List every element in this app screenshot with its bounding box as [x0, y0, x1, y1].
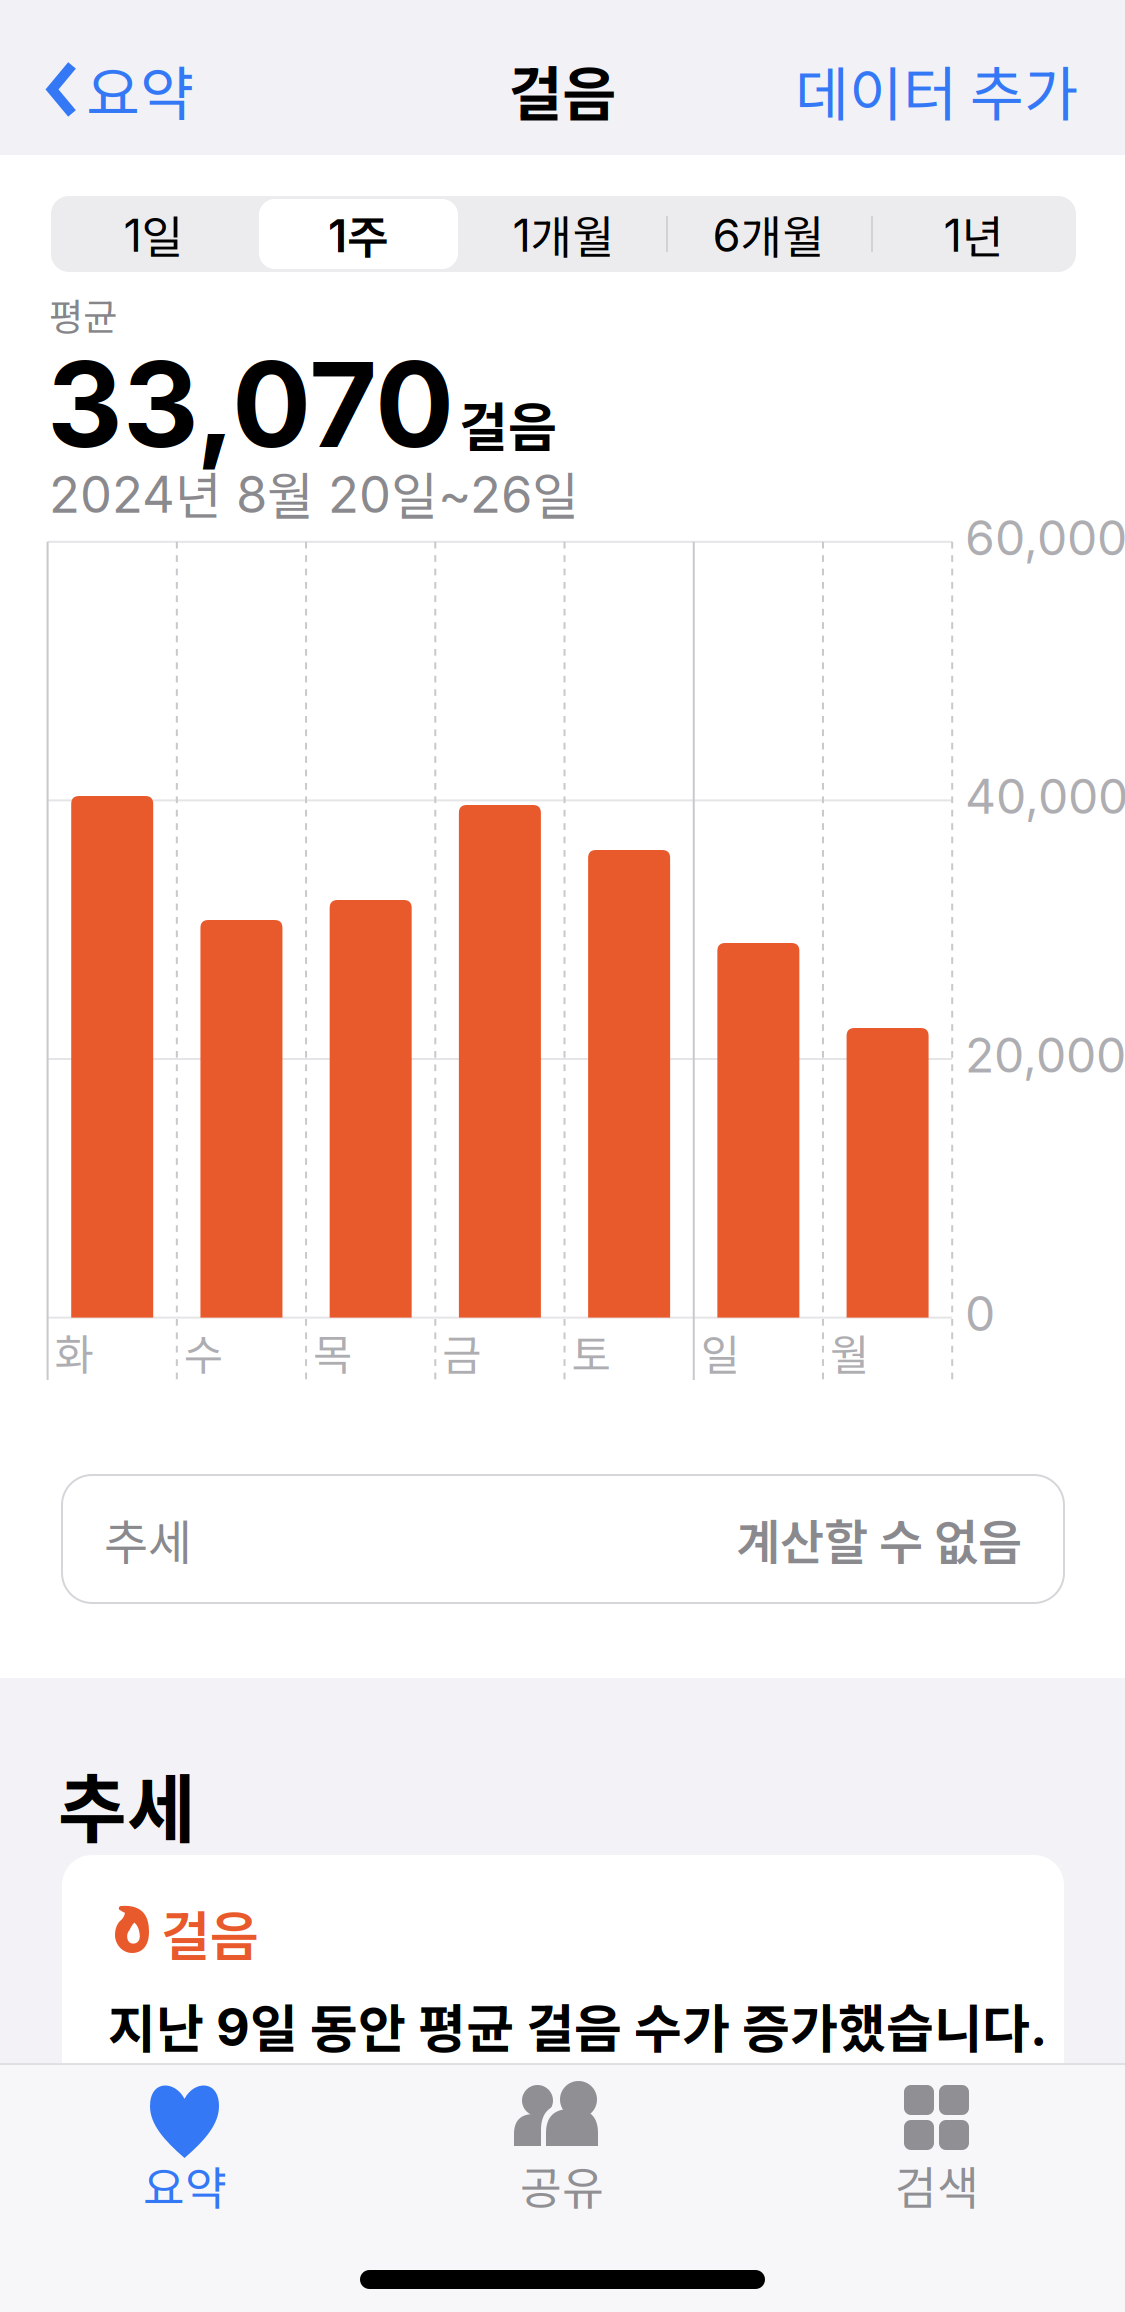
staticText: 추세	[58, 1751, 196, 1856]
staticText: 1개월	[512, 202, 614, 266]
staticText: 공유	[520, 2153, 604, 2217]
staticText: 월	[830, 1322, 869, 1382]
staticText: 걸음	[161, 1895, 259, 1970]
button[interactable]: 1년	[871, 196, 1076, 272]
staticText: 걸음	[459, 386, 557, 461]
staticText: 걸음	[508, 49, 616, 131]
staticText: 20,000	[965, 1027, 1125, 1083]
staticText: 60,000	[965, 509, 1125, 566]
staticText: 금	[442, 1322, 481, 1382]
staticText: 계산할 수 없음	[736, 1505, 1022, 1573]
button[interactable]: 요약	[52, 48, 194, 131]
button[interactable]: 요약	[60, 2065, 310, 2235]
staticText: 수	[184, 1322, 223, 1382]
staticText: 추세	[104, 1505, 192, 1573]
staticText: 6개월	[712, 202, 824, 266]
button[interactable]: 6개월	[666, 196, 871, 272]
staticText: 검색	[895, 2153, 979, 2217]
staticText: 40,000	[965, 768, 1125, 825]
button[interactable]: 공유	[437, 2065, 687, 2235]
staticText: 화	[55, 1322, 94, 1382]
staticText: 토	[571, 1322, 610, 1382]
button[interactable]: 걸음	[62, 1855, 1064, 2312]
staticText: 33,070	[47, 335, 454, 473]
button[interactable]: 데이터 추가	[795, 49, 1078, 131]
staticText: 목	[313, 1322, 352, 1382]
button[interactable]: 1주	[256, 196, 461, 272]
button[interactable]: 1일	[51, 196, 256, 272]
staticText: 지난 9일 동안 평균 걸음 수가 증가했습니다.	[108, 1988, 1047, 2062]
staticText: 요약	[86, 48, 194, 131]
staticText: 0	[965, 1285, 995, 1342]
staticText: 일	[701, 1322, 740, 1382]
staticText: 1년	[943, 202, 1003, 266]
staticText: 1일	[123, 202, 183, 266]
staticText: 1주	[328, 202, 389, 266]
staticText: 평균	[49, 288, 117, 341]
staticText: 요약	[143, 2153, 227, 2217]
button[interactable]: 검색	[812, 2065, 1062, 2235]
button[interactable]: 1개월	[461, 196, 666, 272]
staticText: 데이터 추가	[795, 49, 1078, 131]
staticText: 2024년 8월 20일~26일	[49, 457, 579, 528]
